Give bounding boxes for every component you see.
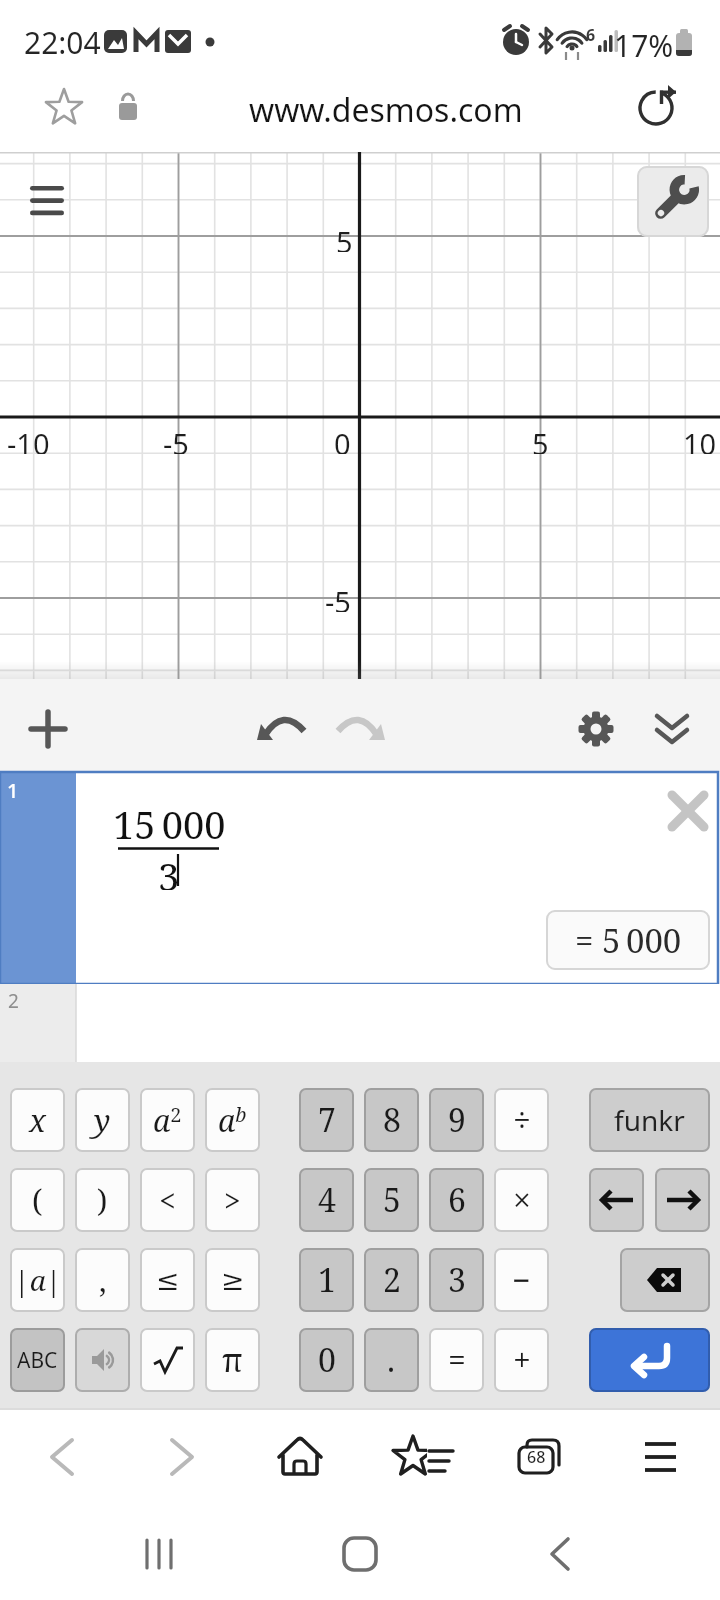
button[interactable] <box>560 690 630 766</box>
staticText: 22:04 <box>24 22 101 60</box>
button[interactable] <box>589 1168 644 1232</box>
staticText: 10 <box>683 424 717 454</box>
button[interactable]: 9 <box>429 1088 484 1152</box>
button[interactable]: × <box>494 1168 549 1232</box>
staticText: 2 <box>383 1258 401 1302</box>
staticText: 0 <box>318 1338 336 1382</box>
button[interactable]: 8 <box>364 1088 419 1152</box>
button[interactable]: 3 <box>429 1248 484 1312</box>
button[interactable]: 6 <box>429 1168 484 1232</box>
button[interactable] <box>636 690 706 766</box>
staticText: 6 <box>586 24 596 42</box>
staticText: = <box>448 1338 466 1382</box>
staticText: × <box>513 1178 531 1222</box>
button[interactable] <box>620 1248 710 1312</box>
staticText: 5 <box>532 424 549 454</box>
button[interactable]: ( <box>10 1168 65 1232</box>
staticText: 2 <box>8 988 19 1012</box>
button[interactable] <box>120 1515 200 1590</box>
staticText: 0 <box>334 424 351 454</box>
button[interactable] <box>520 1515 600 1590</box>
staticText: ÷ <box>513 1098 531 1142</box>
button[interactable]: ab <box>205 1088 260 1152</box>
button[interactable] <box>0 70 720 152</box>
button[interactable]: > <box>205 1168 260 1232</box>
button[interactable]: ≤ <box>140 1248 195 1312</box>
staticText: 17% <box>614 25 674 59</box>
button[interactable]: |a| <box>10 1248 65 1312</box>
staticText: 3 <box>158 850 180 890</box>
button[interactable]: ABC <box>10 1328 65 1392</box>
button[interactable] <box>320 1515 400 1590</box>
button[interactable]: 4 <box>299 1168 354 1232</box>
staticText: > <box>224 1180 241 1221</box>
button[interactable]: 2 <box>364 1248 419 1312</box>
staticText: a2 <box>153 1100 182 1141</box>
staticText: www.desmos.com <box>249 88 523 132</box>
staticText: 4 <box>318 1178 336 1222</box>
button[interactable] <box>10 690 86 766</box>
staticText: + <box>513 1338 531 1382</box>
staticText: 6 <box>448 1178 466 1222</box>
button[interactable]: x <box>10 1088 65 1152</box>
staticText: . <box>387 1338 396 1382</box>
staticText: -10 <box>7 424 50 454</box>
staticText: ABC <box>17 1346 58 1375</box>
staticText: 5 <box>383 1178 401 1222</box>
staticText: 7 <box>318 1098 336 1142</box>
button[interactable] <box>0 984 720 1062</box>
staticText: 3 <box>448 1258 466 1302</box>
button[interactable] <box>637 166 709 237</box>
staticText: 1 <box>318 1258 336 1302</box>
button[interactable]: 0 <box>299 1328 354 1392</box>
staticText: = 5 000 <box>575 918 682 963</box>
button[interactable] <box>268 1415 338 1495</box>
button[interactable] <box>326 690 392 766</box>
button[interactable]: = <box>429 1328 484 1392</box>
button[interactable] <box>150 1415 220 1495</box>
staticText: ≥ <box>221 1264 245 1297</box>
button[interactable]: < <box>140 1168 195 1232</box>
staticText: ) <box>97 1180 108 1221</box>
staticText: x <box>29 1099 46 1141</box>
staticText: ( <box>32 1180 43 1221</box>
button[interactable] <box>30 1415 100 1495</box>
staticText: |a| <box>14 1261 62 1299</box>
button[interactable]: 7 <box>299 1088 354 1152</box>
staticText: ab <box>218 1100 247 1141</box>
staticText: π <box>222 1338 243 1382</box>
button[interactable]: 5 <box>364 1168 419 1232</box>
button[interactable] <box>655 1168 710 1232</box>
button[interactable]: , <box>75 1248 130 1312</box>
staticText: 68 <box>527 1446 546 1468</box>
button[interactable]: ≥ <box>205 1248 260 1312</box>
button[interactable] <box>385 1415 455 1495</box>
staticText: , <box>99 1260 107 1301</box>
button[interactable] <box>75 1328 130 1392</box>
button[interactable] <box>250 690 316 766</box>
button[interactable]: ÷ <box>494 1088 549 1152</box>
button[interactable]: − <box>494 1248 549 1312</box>
button[interactable]: . <box>364 1328 419 1392</box>
staticText: 1 <box>7 777 19 803</box>
staticText: < <box>159 1180 176 1221</box>
staticText: 9 <box>448 1098 466 1142</box>
staticText: 5 <box>336 222 353 252</box>
button[interactable] <box>140 1328 195 1392</box>
button[interactable]: a2 <box>140 1088 195 1152</box>
button[interactable]: ) <box>75 1168 130 1232</box>
staticText: 8 <box>383 1098 401 1142</box>
button[interactable] <box>628 1415 698 1495</box>
button[interactable] <box>589 1328 710 1392</box>
button[interactable]: π <box>205 1328 260 1392</box>
button[interactable]: y <box>75 1088 130 1152</box>
staticText: 15 000 <box>113 798 226 846</box>
button[interactable]: funkr <box>589 1088 710 1152</box>
button[interactable] <box>0 772 718 984</box>
staticText: y <box>94 1099 111 1141</box>
button[interactable]: 1 <box>299 1248 354 1312</box>
staticText: funkr <box>614 1101 685 1139</box>
button[interactable]: + <box>494 1328 549 1392</box>
staticText: − <box>512 1258 531 1302</box>
button[interactable] <box>503 1415 573 1495</box>
